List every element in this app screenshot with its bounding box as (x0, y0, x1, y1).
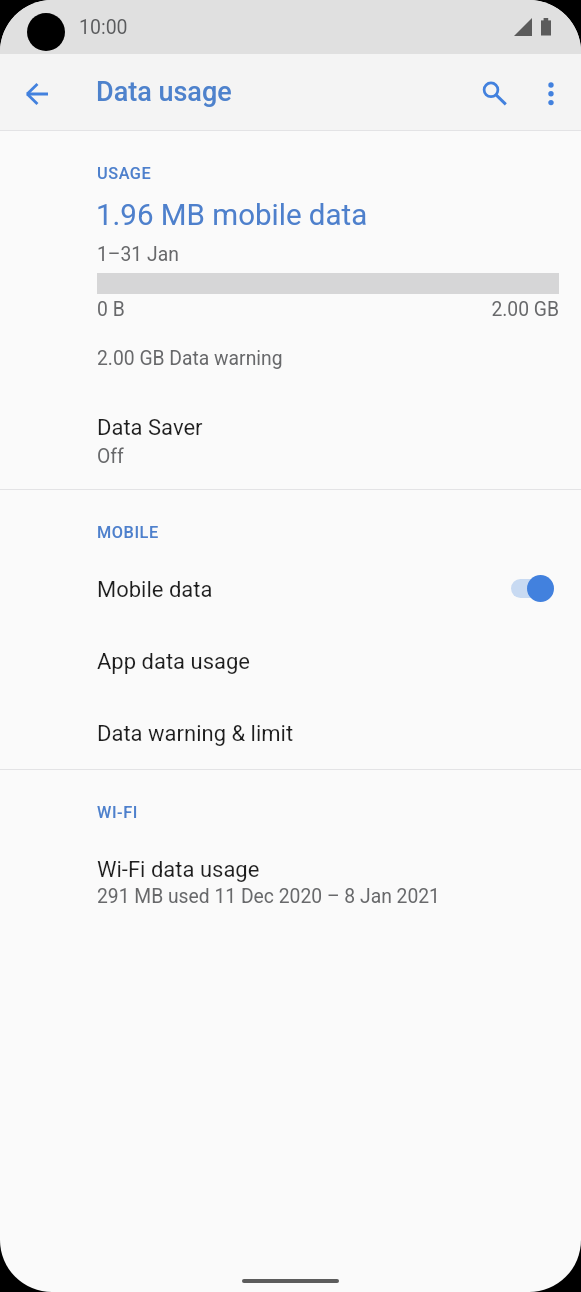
button[interactable]: App data usage (0, 626, 581, 698)
button[interactable]: Search (467, 68, 515, 116)
staticText: MOBILE (97, 523, 159, 542)
button[interactable]: Wi-Fi data usage (0, 846, 581, 921)
staticText: 2.00 GB Data warning (97, 347, 283, 370)
staticText: Data warning & limit (97, 721, 294, 747)
button[interactable]: Mobile data on (511, 574, 554, 602)
staticText: 2.00 GB (359, 298, 559, 321)
button[interactable]: More options (527, 69, 575, 117)
staticText: Data Saver (97, 415, 203, 441)
staticText: 1–31 Jan (97, 243, 179, 266)
staticText: 10:00 (79, 16, 128, 39)
staticText: 1.96 MB mobile data (96, 198, 368, 233)
staticText: App data usage (97, 649, 250, 675)
staticText: Data usage (96, 76, 232, 108)
button[interactable]: Data Saver (0, 404, 581, 479)
staticText: Wi-Fi data usage (97, 857, 260, 883)
button[interactable]: Navigate up (13, 69, 61, 117)
staticText: USAGE (97, 164, 152, 183)
button[interactable]: Data warning & limit (0, 698, 581, 770)
staticText: 291 MB used 11 Dec 2020 – 8 Jan 2021 (97, 885, 440, 908)
button[interactable]: Mobile data (0, 554, 581, 626)
staticText: WI-FI (97, 803, 138, 822)
staticText: Mobile data (97, 577, 213, 603)
staticText: Off (97, 445, 124, 468)
staticText: 0 B (97, 298, 125, 321)
